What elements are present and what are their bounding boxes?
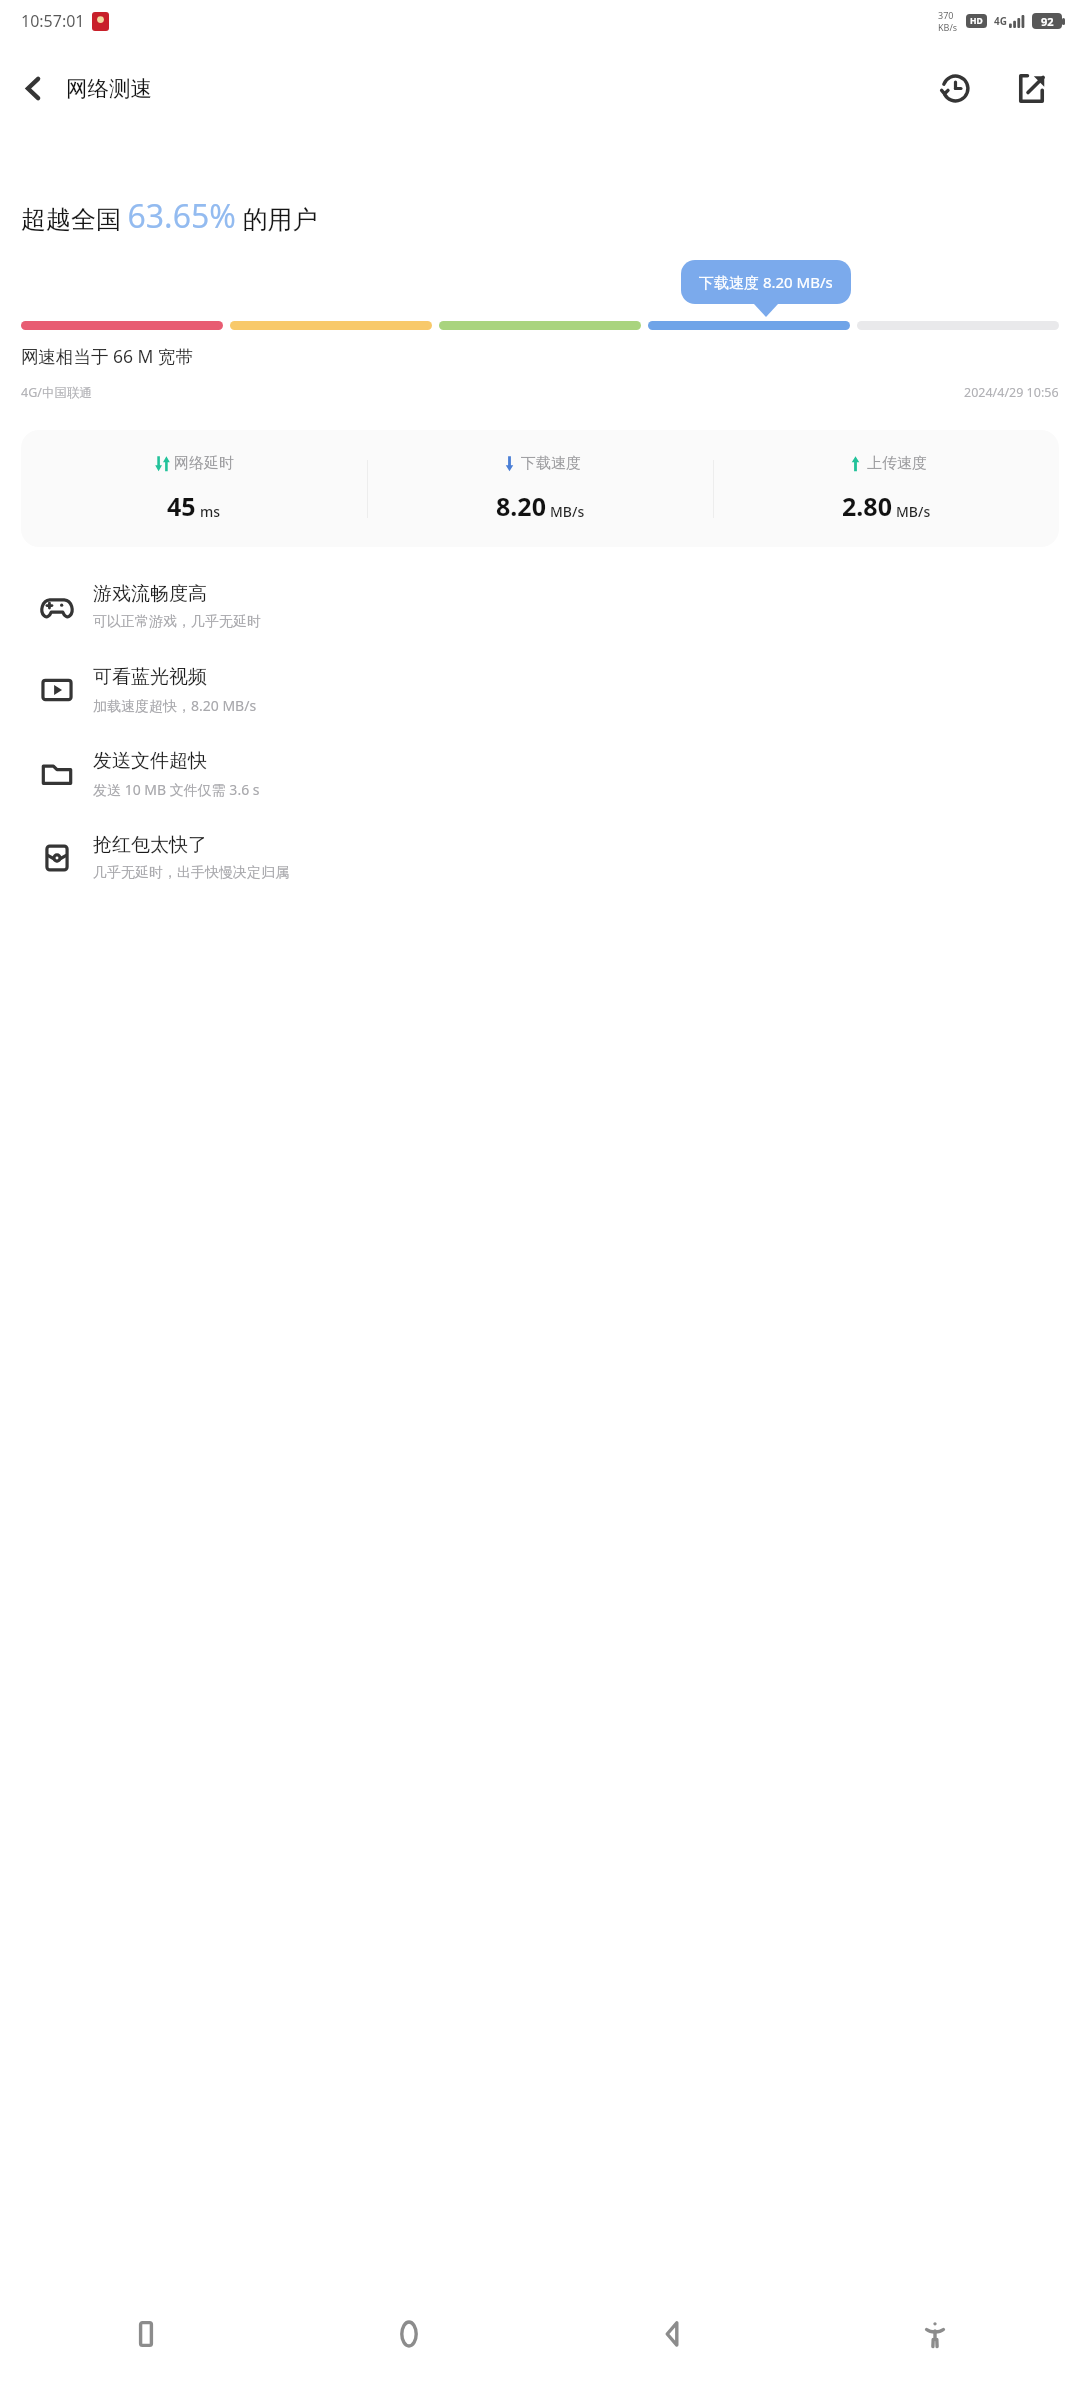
staticText: 抢红包太快了 bbox=[93, 833, 207, 857]
button[interactable]: Accessibility bbox=[803, 2260, 1066, 2408]
staticText: 4G bbox=[994, 14, 1007, 28]
staticText: 10:57:01 bbox=[21, 10, 85, 32]
staticText: 370 bbox=[938, 9, 954, 21]
button[interactable]: 游戏流畅度高 bbox=[0, 565, 1080, 648]
staticText: 上传速度 bbox=[867, 454, 927, 473]
button[interactable]: 抢红包太快了 bbox=[0, 816, 1080, 899]
staticText: 加载速度超快，8.20 MB/s bbox=[93, 696, 257, 715]
staticText: 4G/中国联通 bbox=[21, 384, 92, 401]
staticText: 45 bbox=[167, 489, 196, 523]
staticText: 92 bbox=[1041, 14, 1054, 29]
button[interactable]: Share bbox=[1002, 59, 1060, 117]
staticText: KB/s bbox=[938, 21, 958, 33]
button[interactable]: 可看蓝光视频 bbox=[0, 648, 1080, 732]
button[interactable]: Recents bbox=[14, 2260, 277, 2408]
staticText: 下载速度 bbox=[521, 454, 581, 473]
staticText: 8.20 bbox=[496, 489, 546, 523]
staticText: 游戏流畅度高 bbox=[93, 582, 207, 606]
staticText: 可以正常游戏，几乎无延时 bbox=[93, 613, 261, 631]
button[interactable]: Home bbox=[277, 2260, 540, 2408]
button[interactable]: Back bbox=[540, 2260, 803, 2408]
button[interactable]: History bbox=[926, 59, 984, 117]
staticText: 几乎无延时，出手快慢决定归属 bbox=[93, 864, 289, 882]
staticText: 发送 10 MB 文件仅需 3.6 s bbox=[93, 780, 260, 799]
staticText: 网速相当于 66 M 宽带 bbox=[21, 344, 194, 368]
staticText: 2.80 bbox=[842, 489, 892, 523]
staticText: 2024/4/29 10:56 bbox=[964, 384, 1059, 401]
button[interactable]: 网络延时 bbox=[21, 430, 1059, 547]
staticText: 超越全国 63.65% 的用户 bbox=[21, 194, 318, 238]
staticText: 网络延时 bbox=[174, 454, 234, 473]
staticText: 可看蓝光视频 bbox=[93, 665, 207, 689]
staticText: MB/s bbox=[896, 502, 931, 521]
button[interactable]: Back bbox=[0, 55, 66, 121]
staticText: 发送文件超快 bbox=[93, 749, 207, 773]
staticText: MB/s bbox=[550, 502, 585, 521]
staticText: HD bbox=[970, 15, 983, 27]
staticText: ms bbox=[200, 502, 221, 521]
staticText: 下载速度 8.20 MB/s bbox=[699, 272, 833, 292]
staticText: 网络测速 bbox=[66, 75, 152, 102]
button[interactable]: 发送文件超快 bbox=[0, 732, 1080, 816]
